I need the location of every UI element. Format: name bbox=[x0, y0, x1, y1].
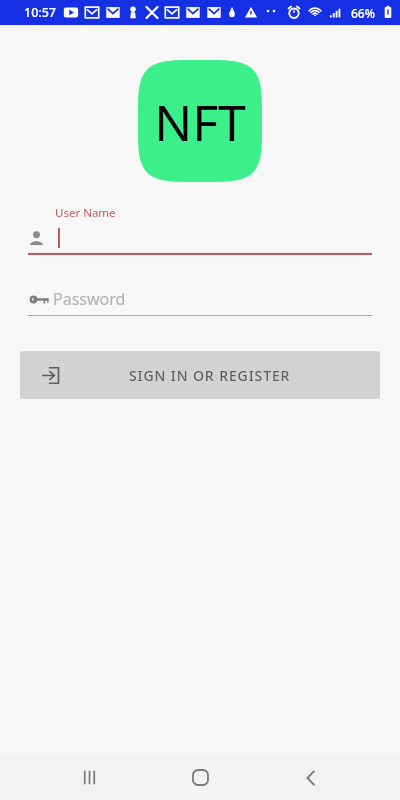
staticText: 66% bbox=[351, 5, 375, 21]
staticText: 10:57 bbox=[24, 4, 57, 21]
staticText: Password bbox=[53, 288, 126, 310]
button[interactable]: SIGN IN OR REGISTER bbox=[20, 351, 380, 399]
staticText: SIGN IN OR REGISTER bbox=[129, 366, 291, 385]
staticText: NFT bbox=[154, 88, 246, 156]
button[interactable]: Password bbox=[28, 288, 372, 316]
button[interactable]: Back bbox=[288, 755, 334, 800]
button[interactable]: Recent apps bbox=[66, 755, 112, 800]
button[interactable]: Home bbox=[177, 755, 223, 800]
staticText: User Name bbox=[55, 205, 116, 221]
button[interactable]: User Name bbox=[28, 205, 372, 255]
